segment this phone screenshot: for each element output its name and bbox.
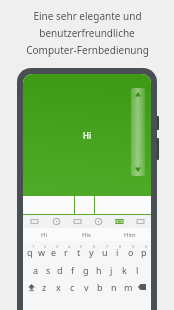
button[interactable]: 1 [24, 244, 36, 259]
staticText: n [111, 281, 117, 293]
staticText: p [141, 246, 147, 258]
button[interactable]: 2 [36, 244, 48, 259]
staticText: 1 [32, 244, 35, 249]
staticText: x [56, 281, 61, 293]
button[interactable]: c [65, 281, 79, 293]
button[interactable]: d [54, 264, 66, 276]
staticText: i [116, 246, 119, 258]
button[interactable]: n [107, 281, 121, 293]
staticText: Hi [41, 231, 47, 239]
staticText: 7 [106, 244, 109, 249]
button[interactable]: k [118, 264, 131, 276]
button[interactable]: Theme [109, 215, 130, 228]
button[interactable]: f [66, 264, 79, 276]
staticText: 5 [80, 244, 83, 249]
staticText: Eine sehr elegante und [33, 9, 142, 23]
staticText: 0 [145, 244, 148, 249]
staticText: z [42, 281, 47, 293]
staticText: 8 [119, 244, 122, 249]
button[interactable]: Scroll slider [131, 88, 145, 176]
staticText: g [83, 264, 89, 276]
button[interactable]: m [121, 281, 135, 293]
button[interactable]: x [51, 281, 65, 293]
staticText: u [102, 246, 108, 258]
button[interactable]: Backspace [135, 281, 149, 293]
button[interactable]: b [93, 281, 107, 293]
staticText: 4 [68, 244, 71, 249]
button[interactable]: g [79, 264, 92, 276]
button[interactable]: z [38, 281, 51, 293]
button[interactable]: Hi [23, 228, 65, 241]
staticText: 3 [56, 244, 59, 249]
button[interactable]: His [65, 228, 108, 241]
staticText: h [96, 264, 102, 276]
staticText: w [38, 246, 46, 258]
button[interactable]: h [92, 264, 105, 276]
button[interactable]: j [105, 264, 118, 276]
button[interactable]: 0 [137, 244, 150, 259]
button[interactable]: 8 [111, 244, 124, 259]
button[interactable]: 7 [98, 244, 111, 259]
staticText: l [136, 264, 139, 276]
button[interactable]: l [131, 264, 144, 276]
button[interactable]: 6 [85, 244, 98, 259]
button[interactable]: Keyboard [23, 215, 45, 228]
staticText: j [110, 264, 113, 276]
staticText: Computer-Fernbedienung [26, 43, 149, 57]
button[interactable]: Him [108, 228, 151, 241]
button[interactable]: 9 [124, 244, 137, 259]
staticText: m [124, 281, 133, 293]
staticText: a [33, 264, 39, 276]
button[interactable]: v [79, 281, 93, 293]
button[interactable]: Shift [25, 281, 38, 293]
staticText: Him [124, 231, 136, 239]
button[interactable]: Language [88, 215, 109, 228]
staticText: e [51, 246, 57, 258]
staticText: 9 [132, 244, 135, 249]
button[interactable]: Emoji [45, 215, 67, 228]
button[interactable]: a [30, 264, 42, 276]
button[interactable]: Clipboard [67, 215, 88, 228]
staticText: His [82, 231, 91, 239]
button[interactable]: 3 [48, 244, 60, 259]
staticText: k [122, 264, 127, 276]
staticText: benutzerfreundliche [39, 26, 135, 40]
staticText: 2 [44, 244, 47, 249]
staticText: y [89, 246, 94, 258]
button[interactable]: 4 [60, 244, 72, 259]
staticText: c [70, 281, 75, 293]
staticText: b [97, 281, 103, 293]
staticText: t [77, 246, 81, 258]
staticText: f [71, 264, 75, 276]
staticText: 6 [93, 244, 96, 249]
staticText: r [64, 246, 68, 258]
button[interactable]: Settings [130, 215, 151, 228]
staticText: q [27, 246, 33, 258]
button[interactable]: s [42, 264, 54, 276]
staticText: o [128, 246, 134, 258]
staticText: s [46, 264, 51, 276]
staticText: v [84, 281, 89, 293]
button[interactable]: 5 [72, 244, 85, 259]
staticText: Hi [83, 130, 92, 141]
staticText: d [57, 264, 63, 276]
